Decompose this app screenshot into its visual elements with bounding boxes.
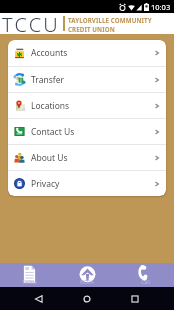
staticText: CREDIT UNION [68,25,115,33]
staticText: About Us [31,152,68,164]
button[interactable]: NCUA [58,263,116,287]
button[interactable]: Privacy [8,171,166,196]
button[interactable]: Recent apps [111,287,159,310]
staticText: NCUA [80,279,94,286]
staticText: TAYLORVILLE COMMUNITY [68,16,152,24]
staticText: Locations [31,100,70,112]
button[interactable]: Transfer [8,67,166,92]
staticText: TCCU [2,11,60,32]
button[interactable]: Contact Us [8,119,166,144]
staticText: Transfer [31,74,64,86]
staticText: Call [141,279,150,286]
button[interactable]: Back [15,287,63,310]
button[interactable]: Locations [8,93,166,118]
button[interactable]: Call [116,263,174,287]
staticText: 10:03 [151,2,171,12]
staticText: Accounts [31,47,68,59]
button[interactable]: About Us [8,145,166,170]
button[interactable]: Home [63,287,111,310]
staticText: Privacy [31,178,60,190]
staticText: Terms [22,279,37,286]
staticText: Contact Us [31,126,75,138]
button[interactable]: Accounts [8,40,166,66]
button[interactable]: Terms [0,263,58,287]
